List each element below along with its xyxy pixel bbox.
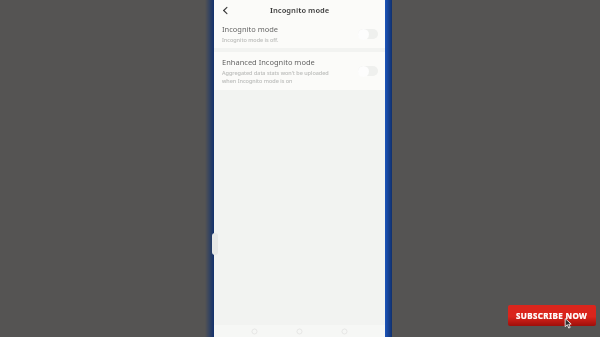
staticText: Incognito mode (270, 5, 330, 15)
button[interactable]: Recents (340, 328, 349, 335)
staticText: Incognito mode (222, 24, 279, 34)
staticText: Aggregated data stats won't be uploaded (222, 69, 329, 76)
button[interactable]: Incognito mode toggle (357, 27, 379, 41)
staticText: SUBSCRIBE NOW (516, 310, 588, 321)
button[interactable]: Home (295, 328, 304, 335)
staticText: Incognito mode is off. (222, 36, 279, 43)
button[interactable]: Back (250, 328, 259, 335)
button[interactable]: Back (217, 2, 233, 18)
staticText: when Incognito mode is on (222, 77, 293, 84)
button[interactable]: Enhanced Incognito mode toggle (357, 64, 379, 78)
button[interactable]: Incognito mode (214, 20, 385, 48)
staticText: Enhanced Incognito mode (222, 57, 315, 67)
button[interactable]: Enhanced Incognito mode (214, 52, 385, 90)
button[interactable]: SUBSCRIBE NOW (508, 305, 596, 326)
